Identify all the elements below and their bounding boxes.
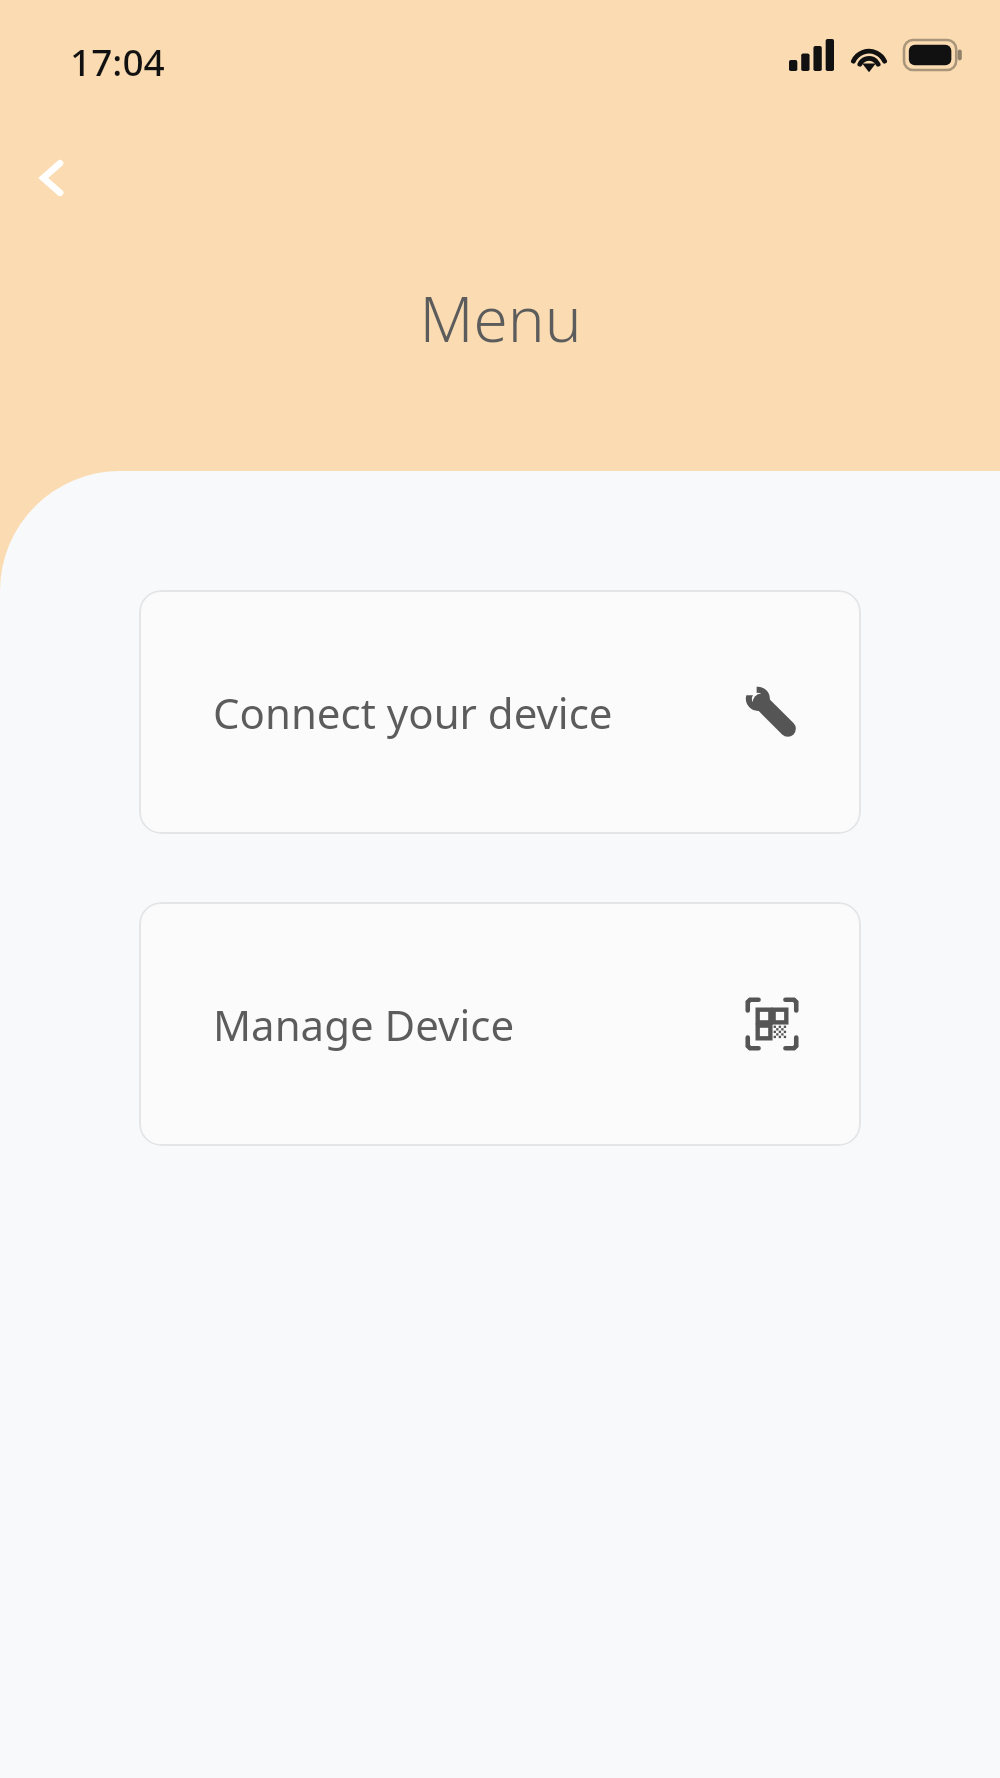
staticText: 17:04 [70,36,165,86]
button[interactable]: Manage Device [139,902,861,1146]
button[interactable]: Back [14,140,90,216]
button[interactable]: Connect your device [139,590,861,834]
staticText: Connect your device [213,684,613,741]
staticText: Manage Device [213,996,515,1053]
staticText: Menu [419,276,582,360]
